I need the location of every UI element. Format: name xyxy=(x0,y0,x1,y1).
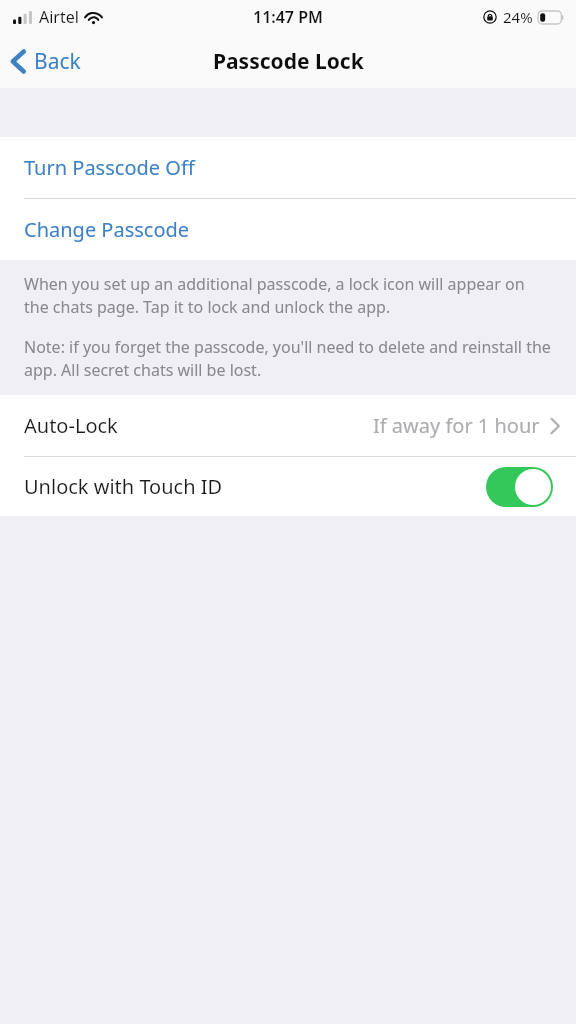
staticText: 24% xyxy=(503,7,533,27)
button[interactable]: Unlock with Touch ID xyxy=(0,457,576,516)
button[interactable]: Back xyxy=(0,39,93,84)
staticText: Change Passcode xyxy=(24,216,190,243)
button[interactable]: Auto-Lock xyxy=(0,395,576,456)
staticText: If away for 1 hour xyxy=(373,412,540,439)
button[interactable]: Unlock with Touch ID toggle, on xyxy=(486,467,553,507)
staticText: 11:47 PM xyxy=(253,6,323,28)
button[interactable]: Turn Passcode Off xyxy=(0,137,576,198)
staticText: Airtel xyxy=(39,6,79,28)
staticText: Note: if you forget the passcode, you'll… xyxy=(24,336,552,381)
staticText: Passcode Lock xyxy=(213,47,364,76)
staticText: Auto-Lock xyxy=(24,412,118,439)
staticText: Back xyxy=(34,47,81,76)
button[interactable]: Change Passcode xyxy=(0,199,576,260)
staticText: When you set up an additional passcode, … xyxy=(24,273,552,318)
staticText: Unlock with Touch ID xyxy=(24,473,223,500)
staticText: Turn Passcode Off xyxy=(24,154,195,181)
